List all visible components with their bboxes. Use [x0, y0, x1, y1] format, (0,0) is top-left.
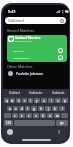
button[interactable]: Backspace — [61, 113, 68, 118]
staticText: v — [35, 114, 37, 118]
staticText: y — [36, 99, 38, 103]
staticText: l — [62, 107, 63, 111]
button[interactable]: Oakland — [5, 17, 66, 24]
button[interactable]: d — [19, 106, 24, 111]
button[interactable]: Voice input — [57, 129, 61, 135]
staticText: Paulette Johnson — [16, 71, 44, 76]
button[interactable]: b — [40, 113, 46, 118]
button[interactable]: u — [41, 98, 47, 103]
staticText: u — [43, 99, 45, 103]
staticText: c — [28, 114, 30, 118]
button[interactable]: z — [12, 113, 18, 118]
button[interactable]: v — [33, 113, 39, 118]
button[interactable]: c — [26, 113, 32, 118]
staticText: Call team — [13, 49, 24, 52]
staticText: 123 — [6, 121, 11, 125]
button[interactable]: p — [62, 98, 68, 103]
button[interactable]: y — [34, 98, 40, 103]
staticText: n — [49, 114, 51, 118]
staticText: s — [15, 107, 17, 111]
staticText: Oakland — [9, 91, 20, 95]
button[interactable]: l — [59, 106, 65, 111]
button[interactable]: k — [52, 106, 58, 111]
button[interactable]: Paulette Johnson — [3, 69, 69, 78]
button[interactable]: r — [22, 98, 27, 103]
button[interactable]: Oaklander — [25, 89, 47, 97]
button[interactable]: g — [31, 106, 37, 111]
button[interactable]: Message team — [7, 54, 67, 60]
staticText: Oakland — [8, 18, 24, 23]
button[interactable]: w — [10, 98, 15, 103]
button[interactable]: Call team — [7, 47, 67, 53]
button[interactable]: Emoji keyboard — [7, 129, 13, 135]
button[interactable]: i — [48, 98, 54, 103]
button[interactable]: f — [25, 106, 30, 111]
staticText: Recent Matches — [7, 28, 35, 33]
button[interactable]: n — [47, 113, 53, 118]
staticText: Basketball club — [15, 39, 32, 42]
staticText: f — [27, 107, 28, 111]
button[interactable]: a — [7, 106, 12, 111]
button[interactable]: Oaklands — [47, 89, 69, 97]
staticText: i — [51, 99, 52, 103]
button[interactable]: Shift — [4, 113, 11, 118]
staticText: a — [9, 107, 11, 111]
button[interactable]: m — [54, 113, 60, 118]
staticText: Oakland Warriors — [15, 36, 41, 40]
staticText: e — [18, 99, 20, 103]
button[interactable]: j — [45, 106, 51, 111]
button[interactable]: Oakland — [3, 89, 25, 97]
staticText: r — [24, 99, 26, 103]
button[interactable]: e — [16, 98, 21, 103]
staticText: g — [33, 107, 35, 111]
staticText: Oaklander — [29, 91, 43, 95]
staticText: h — [40, 107, 42, 111]
button[interactable]: q — [4, 98, 9, 103]
staticText: Oaklands — [52, 91, 65, 95]
staticText: 9:41 — [8, 9, 16, 14]
staticText: z — [14, 114, 16, 118]
staticText: go — [60, 121, 64, 125]
staticText: d — [21, 107, 23, 111]
staticText: q — [6, 99, 8, 103]
staticText: t — [30, 99, 32, 103]
staticText: Message team — [13, 56, 30, 59]
staticText: j — [48, 107, 49, 111]
button[interactable]: x — [19, 113, 25, 118]
staticText: m — [56, 114, 59, 118]
button[interactable]: 123 — [4, 120, 13, 126]
button[interactable]: Call — [58, 48, 63, 53]
staticText: b — [42, 114, 44, 118]
staticText: Other Matches — [7, 64, 33, 69]
button[interactable]: h — [38, 106, 44, 111]
button[interactable]: Clear search — [60, 19, 64, 23]
staticText: p — [64, 99, 66, 103]
button[interactable]: go — [56, 120, 68, 126]
button[interactable]: o — [55, 98, 61, 103]
button[interactable]: s — [13, 106, 18, 111]
staticText: o — [57, 99, 59, 103]
button[interactable]: Message — [58, 55, 63, 60]
button[interactable]: t — [28, 98, 33, 103]
staticText: w — [11, 99, 14, 103]
staticText: k — [54, 107, 56, 111]
staticText: x — [21, 114, 23, 118]
button[interactable]: Oakland Warriors — [7, 35, 67, 62]
